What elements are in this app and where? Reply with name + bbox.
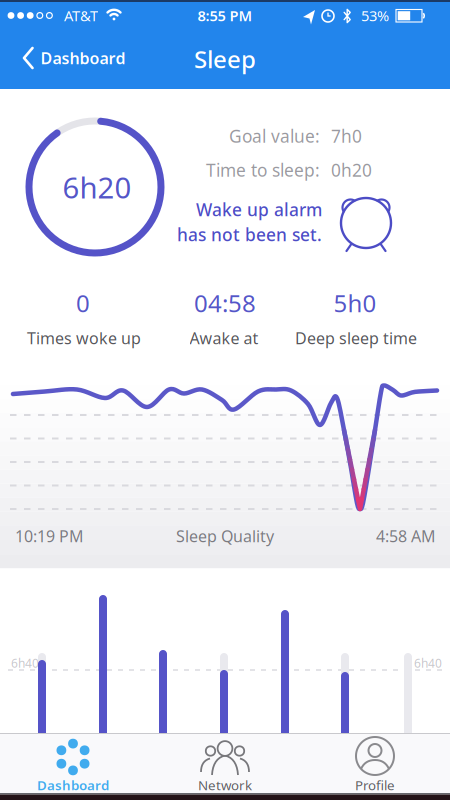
staticText: has not been set. bbox=[177, 223, 322, 246]
staticText: AT&T bbox=[64, 6, 98, 25]
staticText: 6h40 bbox=[414, 655, 442, 671]
staticText: 53% bbox=[361, 6, 389, 25]
staticText: Time to sleep: bbox=[206, 158, 320, 181]
staticText: 8:55 PM bbox=[197, 6, 252, 25]
staticText: Awake at bbox=[189, 327, 258, 349]
staticText: Network bbox=[198, 776, 252, 794]
staticText: Goal value: bbox=[229, 124, 320, 147]
staticText: Dashboard bbox=[40, 47, 125, 69]
button[interactable]: Network bbox=[160, 734, 290, 794]
staticText: 5h0 bbox=[333, 287, 376, 319]
staticText: 0 bbox=[76, 287, 90, 319]
staticText: Wake up alarm bbox=[196, 198, 322, 221]
staticText: Times woke up bbox=[27, 327, 141, 349]
staticText: 7h0 bbox=[331, 124, 362, 147]
staticText: Dashboard bbox=[37, 776, 109, 794]
staticText: Sleep bbox=[194, 43, 256, 75]
button[interactable]: Profile bbox=[309, 734, 439, 794]
staticText: 6h40 bbox=[11, 655, 39, 671]
staticText: 6h20 bbox=[62, 167, 131, 206]
staticText: 04:58 bbox=[194, 287, 256, 319]
button[interactable]: Dashboard bbox=[9, 38, 139, 78]
staticText: Profile bbox=[355, 776, 395, 794]
staticText: 10:19 PM bbox=[15, 525, 84, 547]
staticText: 4:58 AM bbox=[376, 525, 436, 547]
button[interactable]: Dashboard bbox=[8, 734, 138, 794]
staticText: Deep sleep time bbox=[295, 327, 417, 349]
staticText: Sleep Quality bbox=[176, 525, 274, 547]
staticText: 0h20 bbox=[331, 158, 372, 181]
